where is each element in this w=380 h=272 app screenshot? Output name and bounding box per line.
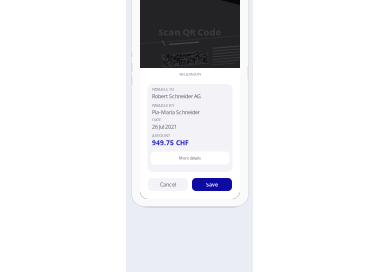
staticText: Pia-Maria Schneider [152, 109, 200, 116]
staticText: VALIDATION [179, 71, 201, 77]
button[interactable]: More details [150, 151, 229, 164]
staticText: AMOUNT [152, 133, 170, 138]
staticText: PAYABLE BY [152, 103, 174, 108]
staticText: More details [179, 155, 201, 161]
button[interactable]: Save [192, 178, 232, 191]
button[interactable]: Cancel [148, 178, 188, 191]
staticText: DATE [152, 117, 161, 122]
staticText: Cancel [160, 181, 176, 188]
staticText: Save [206, 181, 218, 188]
staticText: 949.75 CHF [152, 138, 189, 147]
staticText: Robert Schneider AG [152, 93, 201, 100]
staticText: PAYABLE TO [152, 87, 174, 92]
staticText: Scan QR Code [158, 26, 221, 38]
staticText: 26 Jul 2021 [152, 123, 177, 130]
